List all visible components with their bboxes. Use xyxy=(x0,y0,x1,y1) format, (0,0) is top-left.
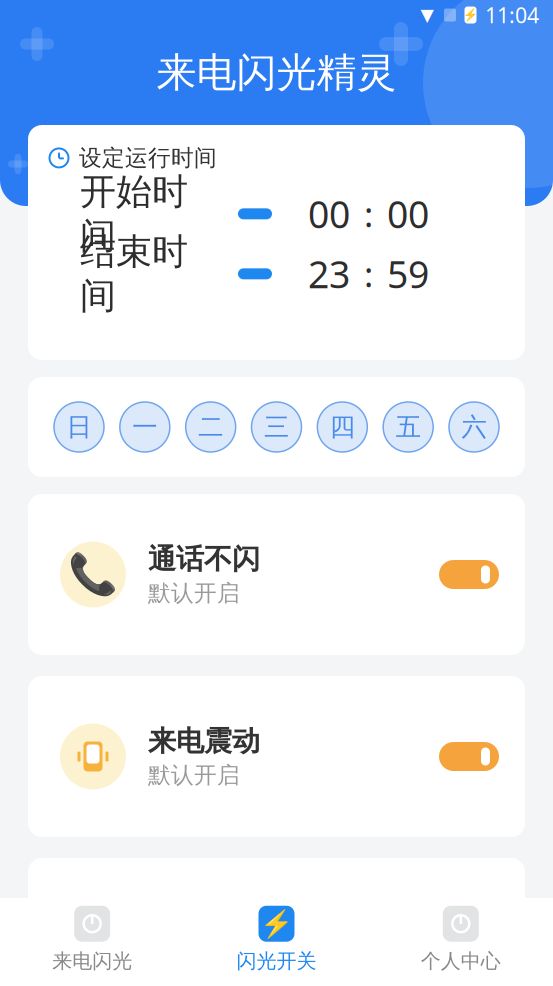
staticText: 日 xyxy=(66,411,91,442)
staticText: 四 xyxy=(330,411,355,442)
button[interactable]: 二 xyxy=(186,402,236,452)
button[interactable]: 开始时间 xyxy=(28,186,525,242)
button[interactable]: 日 xyxy=(54,402,104,452)
button[interactable]: 来电闪光 xyxy=(0,896,184,985)
staticText: ⚡ xyxy=(260,908,293,939)
staticText: 来电闪光精灵 xyxy=(156,48,396,97)
staticText: : xyxy=(364,251,373,297)
staticText: 六 xyxy=(461,411,486,442)
staticText: 59 xyxy=(387,249,429,299)
staticText: 11:04 xyxy=(485,1,539,29)
staticText: 默认开启 xyxy=(148,761,240,789)
button[interactable]: 五 xyxy=(383,402,433,452)
staticText: 来电震动 xyxy=(148,724,260,758)
button[interactable]: 一 xyxy=(120,402,170,452)
staticText: 00 xyxy=(387,189,429,239)
button[interactable]: 三 xyxy=(251,402,301,452)
staticText: ▼ xyxy=(420,5,433,25)
staticText: 📞 xyxy=(68,552,118,597)
button[interactable]: 来电震动 xyxy=(28,676,525,837)
staticText: 通话不闪 xyxy=(148,542,260,576)
staticText: 一 xyxy=(132,411,157,442)
button[interactable]: ⚡ xyxy=(184,896,369,985)
staticText: 23 xyxy=(308,249,350,299)
button[interactable]: 结束时间 xyxy=(28,246,525,302)
staticText: : xyxy=(364,191,373,237)
staticText: 二 xyxy=(198,411,223,442)
staticText: 来电闪光 xyxy=(52,949,132,973)
staticText: 三 xyxy=(264,411,289,442)
staticText: 个人中心 xyxy=(421,949,501,973)
staticText: 闪光开关 xyxy=(236,949,316,973)
staticText: 五 xyxy=(396,411,421,442)
staticText: 开始时间 xyxy=(80,170,188,258)
staticText: 00 xyxy=(308,189,350,239)
button[interactable]: 六 xyxy=(449,402,499,452)
staticText: 设定运行时间 xyxy=(79,144,217,172)
staticText: 默认开启 xyxy=(148,579,240,607)
button[interactable]: 开关 xyxy=(439,560,499,589)
button[interactable]: 📞 xyxy=(28,494,525,655)
button[interactable]: 四 xyxy=(317,402,367,452)
button[interactable]: 个人中心 xyxy=(369,896,553,985)
staticText: 结束时间 xyxy=(80,230,188,318)
button[interactable]: 开关 xyxy=(439,742,499,771)
staticText: ⚡ xyxy=(463,8,478,22)
